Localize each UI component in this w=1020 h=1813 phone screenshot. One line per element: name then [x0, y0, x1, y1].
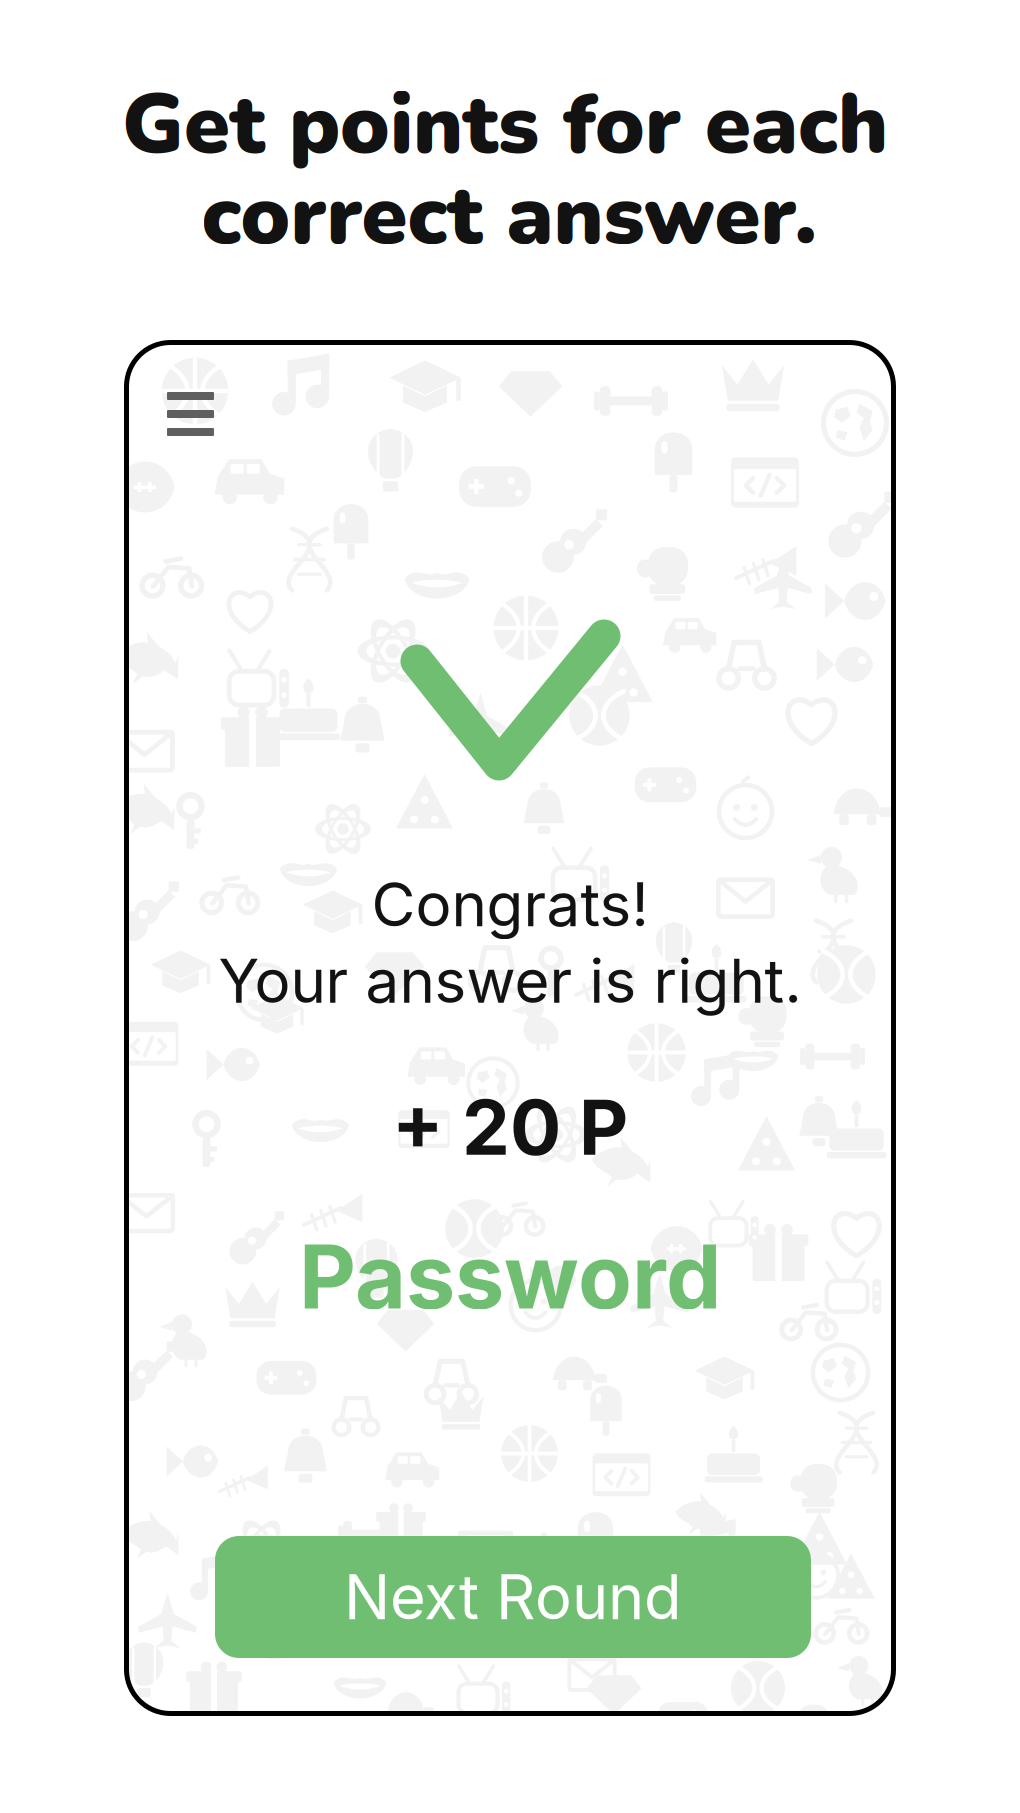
staticText: correct answer.	[201, 160, 816, 273]
staticText: + 20 P	[392, 1081, 628, 1173]
staticText: Get points for each	[122, 69, 888, 182]
staticText: Your answer is right.	[218, 945, 801, 1017]
staticText: Congrats!	[371, 868, 648, 941]
button[interactable]: Next Round	[215, 1536, 811, 1658]
button[interactable]: Menu	[157, 382, 224, 446]
staticText: Next Round	[344, 1560, 682, 1634]
staticText: Password	[299, 1223, 721, 1330]
